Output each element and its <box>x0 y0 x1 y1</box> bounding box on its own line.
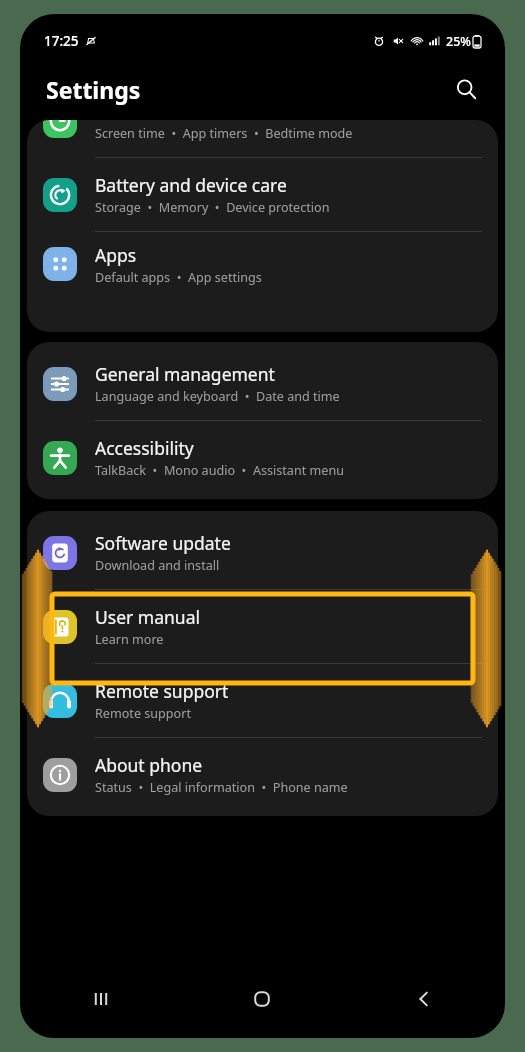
staticText: Remote support <box>95 705 191 722</box>
button[interactable]: About phone <box>27 738 498 811</box>
button[interactable]: User manual <box>27 590 498 663</box>
button[interactable]: Home <box>181 968 343 1030</box>
button[interactable]: General management <box>27 347 498 420</box>
staticText: Learn more <box>95 631 164 648</box>
staticText: Screen time • App timers • Bedtime mode <box>95 125 353 142</box>
staticText: Storage • Memory • Device protection <box>95 199 330 216</box>
staticText: TalkBack • Mono audio • Assistant menu <box>95 462 344 479</box>
staticText: About phone <box>95 753 203 777</box>
staticText: Settings <box>46 74 141 105</box>
button[interactable]: Remote support <box>27 664 498 737</box>
staticText: General management <box>95 362 275 386</box>
button[interactable]: Apps <box>27 232 498 296</box>
staticText: Accessibility <box>95 436 194 460</box>
button[interactable]: Controls <box>27 120 498 157</box>
button[interactable]: Battery and device care <box>27 158 498 231</box>
button[interactable]: Recent apps <box>20 968 181 1030</box>
staticText: User manual <box>95 605 200 629</box>
button[interactable]: Accessibility <box>27 421 498 494</box>
staticText: Download and install <box>95 557 220 574</box>
staticText: Battery and device care <box>95 173 287 197</box>
button[interactable]: Software update <box>27 516 498 589</box>
staticText: Apps <box>95 243 137 267</box>
button[interactable]: Back <box>343 968 505 1030</box>
staticText: Remote support <box>95 679 229 703</box>
staticText: Software update <box>95 531 231 555</box>
staticText: Status • Legal information • Phone name <box>95 779 348 796</box>
staticText: Language and keyboard • Date and time <box>95 388 340 405</box>
staticText: 17:25 <box>44 32 79 50</box>
staticText: 25% <box>446 33 471 50</box>
button[interactable]: Search <box>449 72 483 106</box>
staticText: Default apps • App settings <box>95 269 262 286</box>
